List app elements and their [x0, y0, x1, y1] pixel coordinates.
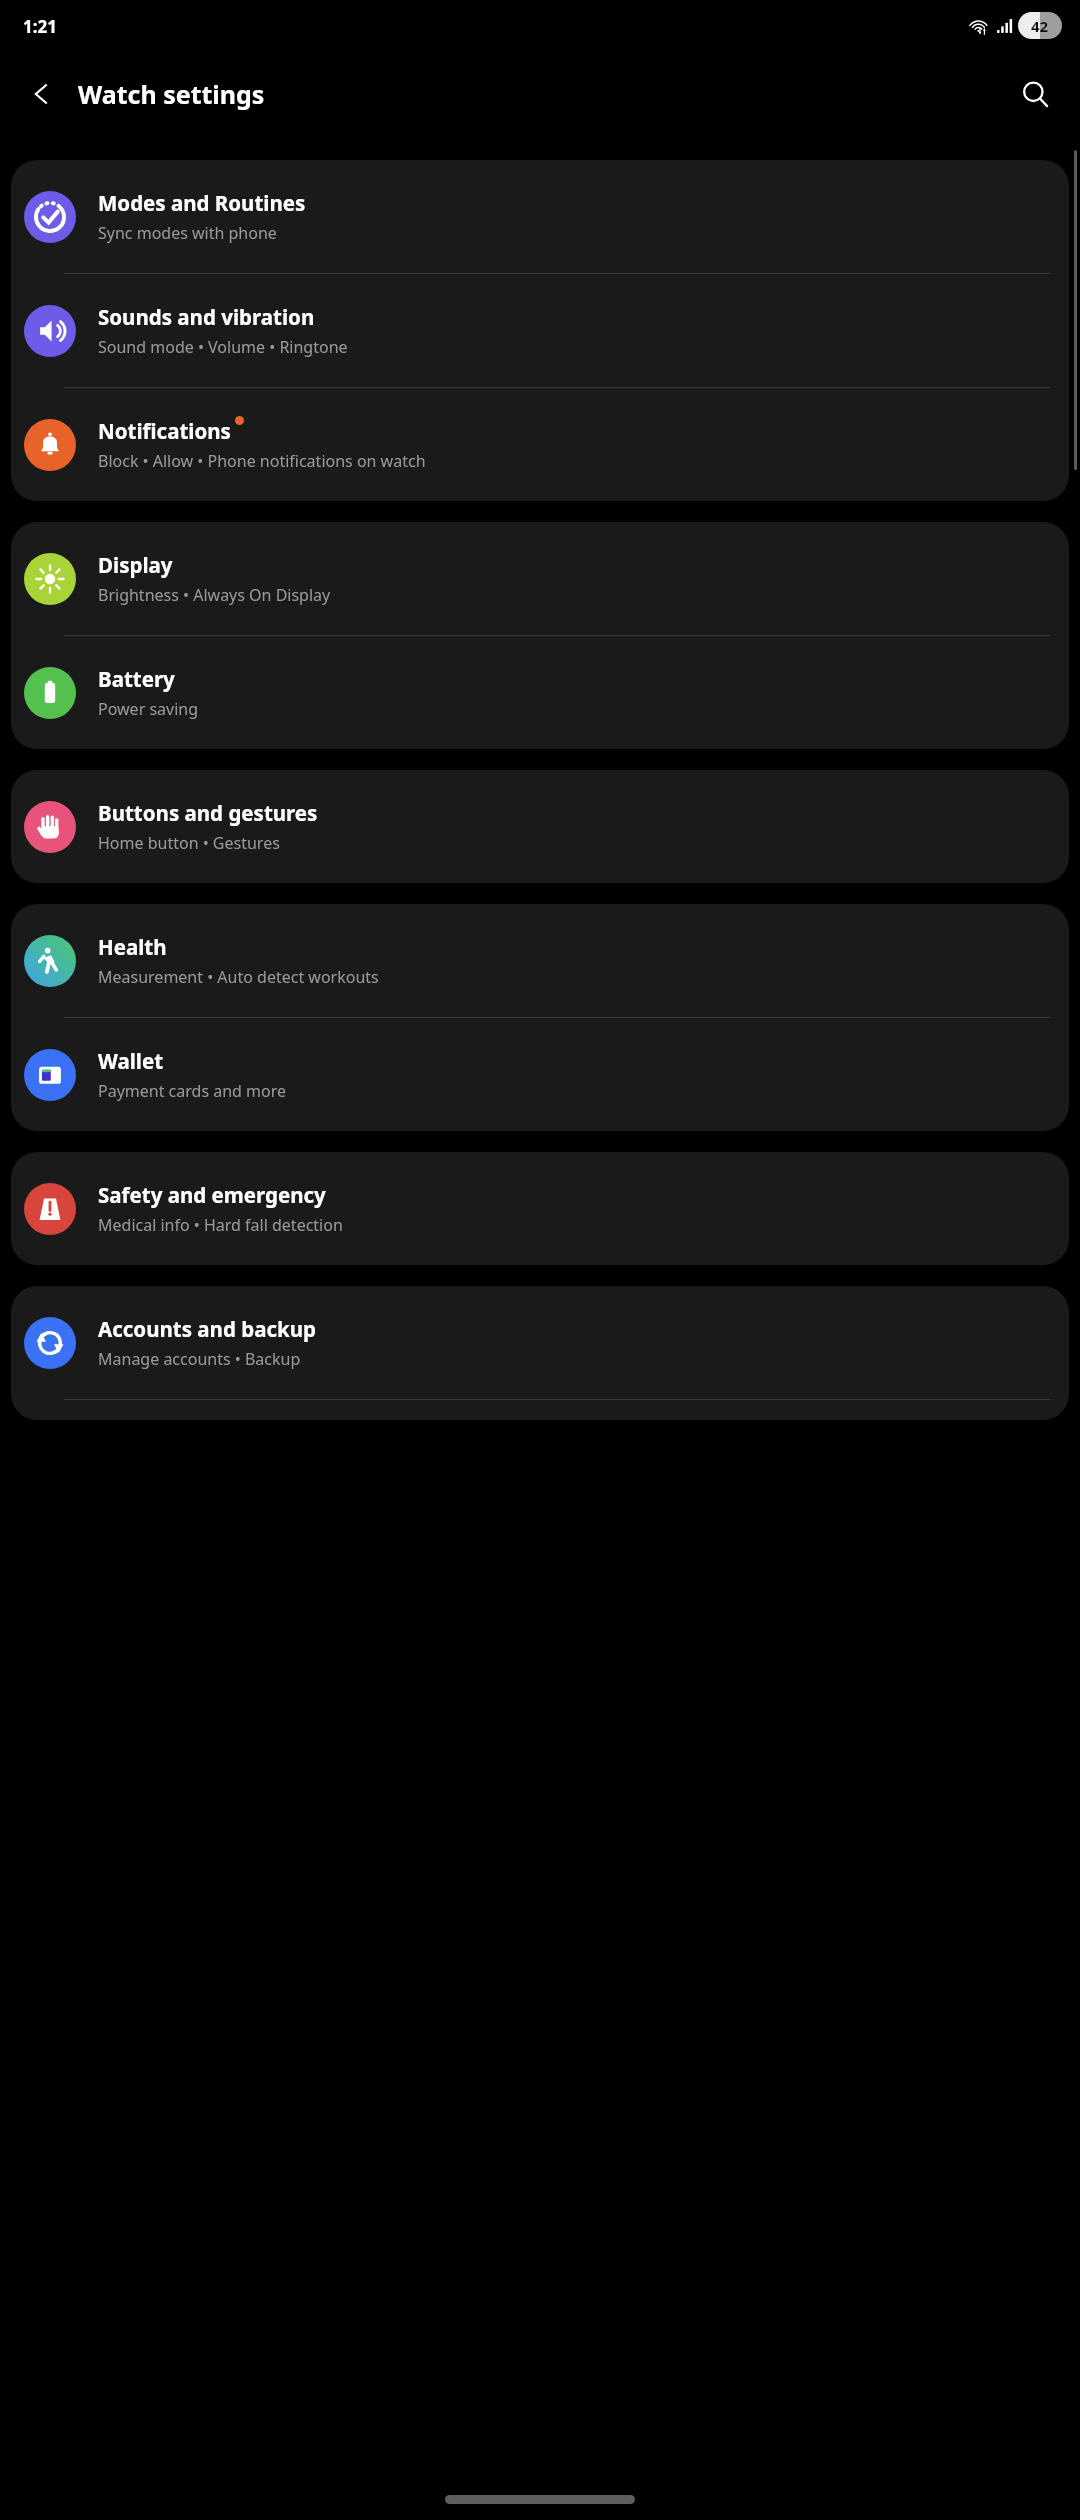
staticText: Home button • Gestures: [98, 832, 280, 854]
button[interactable]: Sounds and vibration: [11, 274, 1069, 387]
staticText: Watch settings: [78, 77, 265, 111]
staticText: 42: [1031, 16, 1049, 36]
staticText: Safety and emergency: [98, 1181, 326, 1209]
button[interactable]: Notifications: [11, 388, 1069, 501]
button[interactable]: Wallet: [11, 1018, 1069, 1131]
staticText: Accounts and backup: [98, 1315, 317, 1343]
staticText: Buttons and gestures: [98, 799, 318, 827]
button[interactable]: Modes and Routines: [11, 160, 1069, 273]
button[interactable]: Display: [11, 522, 1069, 635]
staticText: Measurement • Auto detect workouts: [98, 966, 379, 988]
staticText: Battery: [98, 665, 175, 693]
staticText: Health: [98, 933, 167, 961]
staticText: Block • Allow • Phone notifications on w…: [98, 450, 426, 472]
button[interactable]: Battery: [11, 636, 1069, 749]
staticText: Display: [98, 551, 173, 579]
staticText: Medical info • Hard fall detection: [98, 1214, 343, 1236]
button[interactable]: Search: [1006, 65, 1064, 123]
staticText: Power saving: [98, 698, 199, 720]
staticText: Sound mode • Volume • Ringtone: [98, 336, 348, 358]
button[interactable]: Back: [14, 66, 70, 122]
button[interactable]: Health: [11, 904, 1069, 1017]
staticText: Notifications: [98, 417, 231, 445]
staticText: Manage accounts • Backup: [98, 1348, 301, 1370]
staticText: Brightness • Always On Display: [98, 584, 331, 606]
button[interactable]: Safety and emergency: [11, 1152, 1069, 1265]
staticText: Payment cards and more: [98, 1080, 287, 1102]
staticText: Sync modes with phone: [98, 222, 277, 244]
staticText: Modes and Routines: [98, 189, 306, 217]
staticText: Sounds and vibration: [98, 303, 315, 331]
staticText: Wallet: [98, 1047, 164, 1075]
staticText: 1:21: [23, 15, 57, 38]
button[interactable]: Buttons and gestures: [11, 770, 1069, 883]
button[interactable]: Accounts and backup: [11, 1286, 1069, 1399]
